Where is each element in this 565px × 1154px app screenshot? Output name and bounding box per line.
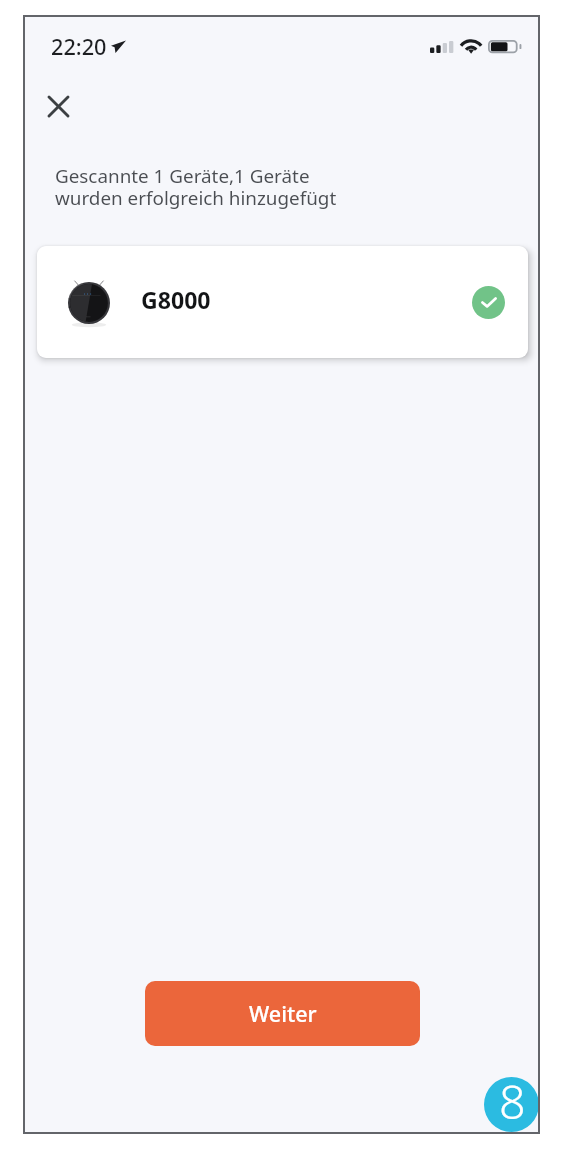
staticText: 8: [499, 1077, 526, 1124]
button[interactable]: Weiter: [145, 981, 420, 1046]
staticText: Weiter: [249, 999, 317, 1028]
button[interactable]: G8000: [37, 246, 528, 358]
button[interactable]: Close: [36, 84, 81, 129]
staticText: Gescannte 1 Geräte,1 Geräte wurden erfol…: [55, 163, 337, 211]
staticText: 22:20: [51, 32, 107, 62]
staticText: G8000: [141, 284, 211, 315]
button[interactable]: Step 8: [484, 1077, 539, 1132]
